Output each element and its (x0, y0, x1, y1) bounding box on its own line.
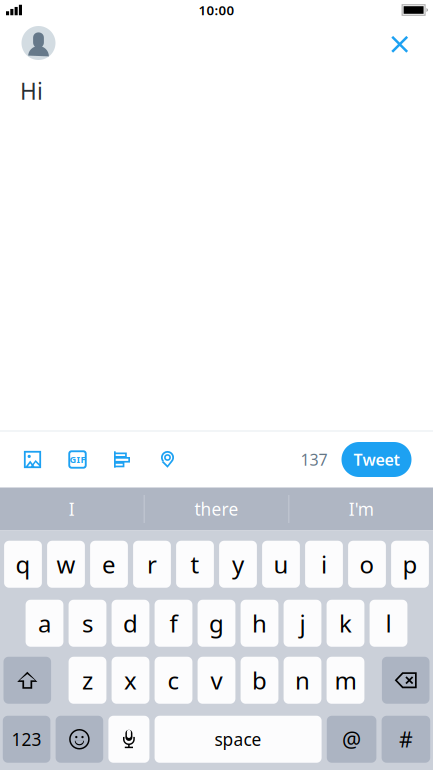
button[interactable]: Shift (3, 657, 51, 704)
staticText: Tweet (353, 449, 399, 470)
button[interactable]: u (262, 541, 300, 588)
staticText: Hi (20, 76, 43, 106)
button[interactable]: @ (327, 716, 376, 763)
button[interactable]: Add GIF (63, 442, 92, 477)
button[interactable]: o (348, 541, 386, 588)
staticText: o (359, 548, 374, 580)
staticText: i (321, 548, 327, 580)
button[interactable]: I (0, 487, 144, 530)
staticText: p (402, 548, 417, 580)
button[interactable]: Emoji (56, 716, 103, 763)
button[interactable]: f (155, 600, 192, 647)
staticText: s (82, 607, 93, 639)
button[interactable]: l (370, 600, 407, 647)
staticText: @ (342, 725, 361, 753)
button[interactable]: s (69, 600, 106, 647)
button[interactable]: Tweet (341, 442, 411, 477)
button[interactable]: k (327, 600, 364, 647)
staticText: 123 (12, 728, 42, 751)
button[interactable]: e (90, 541, 128, 588)
staticText: k (339, 607, 352, 639)
staticText: I'm (349, 497, 374, 520)
staticText: n (295, 664, 310, 696)
button[interactable]: h (241, 600, 278, 647)
button[interactable]: Add photo (18, 442, 47, 477)
staticText: m (334, 664, 356, 696)
button[interactable]: space (155, 716, 322, 763)
button[interactable]: y (219, 541, 257, 588)
button[interactable]: # (382, 716, 430, 763)
staticText: z (82, 664, 93, 696)
staticText: w (56, 548, 75, 580)
button[interactable]: i (305, 541, 343, 588)
button[interactable]: w (47, 541, 85, 588)
button[interactable]: r (133, 541, 171, 588)
button[interactable]: d (112, 600, 149, 647)
staticText: l (385, 607, 391, 639)
button[interactable]: I'm (289, 487, 433, 530)
staticText: 137 (300, 449, 327, 470)
button[interactable]: v (198, 657, 235, 704)
staticText: a (38, 607, 51, 639)
button[interactable]: a (26, 600, 63, 647)
button[interactable]: Delete (382, 657, 429, 704)
staticText: e (102, 548, 116, 580)
staticText: d (123, 607, 138, 639)
button[interactable]: g (198, 600, 235, 647)
button[interactable]: there (145, 487, 288, 530)
staticText: y (232, 548, 244, 580)
button[interactable]: 123 (3, 716, 50, 763)
staticText: j (299, 607, 305, 639)
staticText: 10:00 (198, 1, 234, 19)
button[interactable]: Add location (153, 442, 182, 477)
button[interactable]: b (241, 657, 278, 704)
button[interactable]: Dictation (108, 716, 149, 763)
button[interactable]: j (284, 600, 321, 647)
button[interactable]: c (155, 657, 192, 704)
staticText: I (69, 497, 75, 520)
staticText: f (169, 607, 177, 639)
staticText: there (194, 497, 238, 520)
button[interactable]: m (327, 657, 364, 704)
staticText: GIF (69, 453, 85, 466)
staticText: t (190, 548, 199, 580)
staticText: c (167, 664, 179, 696)
staticText: r (147, 548, 157, 580)
staticText: b (252, 664, 267, 696)
staticText: x (124, 664, 137, 696)
staticText: h (252, 607, 267, 639)
staticText: u (273, 548, 288, 580)
button[interactable]: p (391, 541, 429, 588)
button[interactable]: q (4, 541, 42, 588)
button[interactable]: Add poll (108, 442, 137, 477)
button[interactable]: n (284, 657, 321, 704)
staticText: # (399, 725, 413, 753)
staticText: g (209, 607, 224, 639)
staticText: q (15, 548, 30, 580)
staticText: space (215, 728, 262, 751)
button[interactable]: z (69, 657, 106, 704)
button[interactable]: x (112, 657, 149, 704)
button[interactable]: t (176, 541, 214, 588)
staticText: v (210, 664, 222, 696)
button[interactable]: Close (382, 27, 417, 62)
